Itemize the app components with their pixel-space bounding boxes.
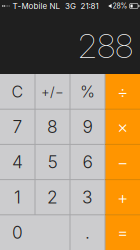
staticText: T-Mobile NL xyxy=(12,1,60,11)
staticText: +/− xyxy=(41,83,64,100)
staticText: C xyxy=(11,82,23,101)
staticText: + xyxy=(117,187,128,208)
button[interactable]: 9 xyxy=(70,109,105,144)
staticText: ÷ xyxy=(117,81,128,102)
button[interactable]: = xyxy=(105,215,140,250)
button[interactable]: 1 xyxy=(0,180,35,215)
staticText: . xyxy=(85,222,90,243)
staticText: 288 xyxy=(78,26,133,66)
staticText: % xyxy=(80,82,95,101)
button[interactable]: 2 xyxy=(35,180,70,215)
button[interactable]: 3 xyxy=(70,180,105,215)
button[interactable]: 0 xyxy=(0,215,70,250)
button[interactable]: +/− xyxy=(35,74,70,109)
staticText: 9 xyxy=(82,116,92,137)
staticText: = xyxy=(117,222,128,243)
staticText: 8 xyxy=(47,116,58,137)
button[interactable]: 4 xyxy=(0,144,35,180)
button[interactable]: 5 xyxy=(35,144,70,180)
staticText: 0 xyxy=(12,222,23,243)
staticText: 3 xyxy=(82,187,93,208)
staticText: 5 xyxy=(47,151,57,172)
button[interactable]: C xyxy=(0,74,35,109)
staticText: 2 xyxy=(47,187,58,208)
button[interactable]: % xyxy=(70,74,105,109)
staticText: 3G xyxy=(65,1,76,11)
button[interactable]: 8 xyxy=(35,109,70,144)
staticText: 21:81 xyxy=(80,1,98,11)
button[interactable]: − xyxy=(105,144,140,180)
staticText: 28% xyxy=(113,2,128,10)
button[interactable]: + xyxy=(105,180,140,215)
staticText: 1 xyxy=(14,187,21,208)
staticText: 7 xyxy=(12,116,22,137)
button[interactable]: × xyxy=(105,109,140,144)
staticText: 4 xyxy=(12,151,23,172)
button[interactable]: 7 xyxy=(0,109,35,144)
staticText: − xyxy=(117,151,128,172)
staticText: × xyxy=(117,116,128,137)
button[interactable]: 6 xyxy=(70,144,105,180)
staticText: 6 xyxy=(82,151,92,172)
button[interactable]: . xyxy=(70,215,105,250)
button[interactable]: ÷ xyxy=(105,74,140,109)
